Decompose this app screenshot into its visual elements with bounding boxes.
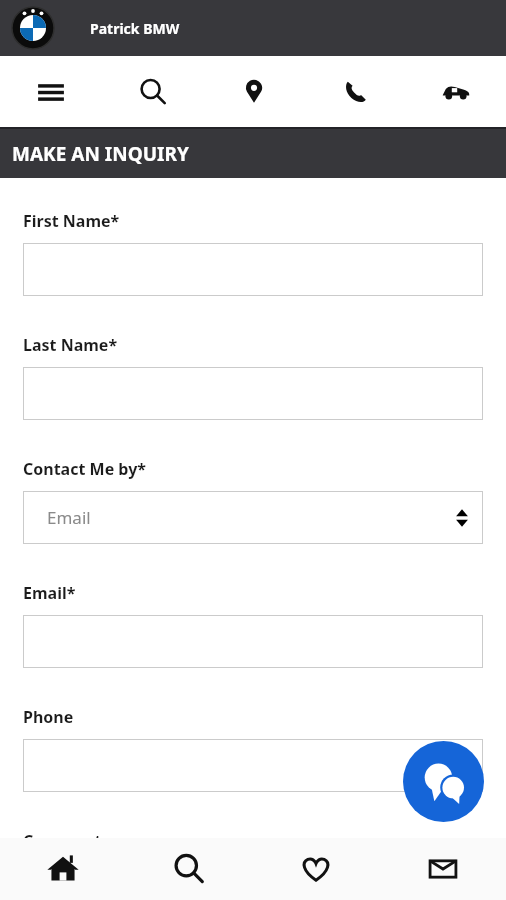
staticText: Patrick BMW bbox=[90, 19, 180, 38]
button[interactable] bbox=[23, 367, 483, 420]
staticText: Phone bbox=[23, 706, 74, 728]
button[interactable] bbox=[23, 615, 483, 668]
staticText: Contact Me by* bbox=[23, 458, 146, 480]
staticText: Last Name* bbox=[23, 334, 118, 356]
button[interactable]: Home bbox=[0, 838, 126, 900]
button[interactable] bbox=[23, 739, 483, 792]
button[interactable]: Chat bbox=[403, 741, 484, 822]
button[interactable]: Messages bbox=[379, 838, 506, 900]
button[interactable]: Menu bbox=[0, 56, 102, 127]
button[interactable]: Email bbox=[23, 491, 483, 544]
button[interactable]: Search bbox=[102, 56, 203, 127]
button[interactable]: Favorites bbox=[252, 838, 379, 900]
staticText: Email bbox=[47, 506, 91, 529]
button[interactable]: Locations bbox=[203, 56, 304, 127]
button[interactable] bbox=[23, 243, 483, 296]
button[interactable]: BMW logo bbox=[12, 7, 54, 49]
staticText: Comments bbox=[23, 830, 110, 852]
staticText: First Name* bbox=[23, 210, 120, 232]
button[interactable] bbox=[23, 863, 483, 900]
button[interactable]: Vehicles bbox=[405, 56, 506, 127]
button[interactable]: Call bbox=[304, 56, 405, 127]
staticText: Email* bbox=[23, 582, 76, 604]
staticText: MAKE AN INQUIRY bbox=[12, 141, 189, 167]
button[interactable]: Search bbox=[126, 838, 252, 900]
